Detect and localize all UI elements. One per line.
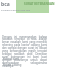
staticText: bca	[1, 1, 10, 8]
staticText: Hormat kami,	[3, 57, 20, 61]
staticText: Kepala Cabang	[3, 63, 22, 67]
staticText: SURAT KETERANGAN	[24, 2, 55, 6]
staticText: Dengan ini menerangkan bahwa nasabah ter…	[2, 35, 47, 68]
staticText: PT Bank Central Asia Tbk	[1, 8, 30, 11]
